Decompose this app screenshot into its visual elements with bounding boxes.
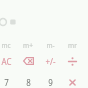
staticText: 8: [26, 77, 31, 88]
button[interactable]: Backspace: [17, 53, 39, 69]
button[interactable]: Divide: [61, 53, 83, 69]
button[interactable]: 9: [39, 74, 61, 88]
staticText: m-: [46, 41, 55, 50]
staticText: mr: [68, 41, 77, 50]
button[interactable]: 8: [17, 74, 39, 88]
staticText: 9: [48, 77, 53, 88]
staticText: 7: [4, 77, 9, 88]
button[interactable]: m+: [17, 38, 39, 52]
staticText: m+: [23, 41, 33, 50]
staticText: AC: [1, 56, 12, 67]
button[interactable]: mc: [0, 38, 17, 52]
button[interactable]: Menu: [8, 17, 18, 27]
button[interactable]: m-: [39, 38, 61, 52]
staticText: +/-: [45, 56, 56, 67]
button[interactable]: +/-: [39, 53, 61, 69]
button[interactable]: Multiply: [61, 74, 83, 88]
button[interactable]: History: [0, 16, 9, 28]
staticText: mc: [1, 41, 11, 50]
button[interactable]: 7: [0, 74, 17, 88]
button[interactable]: mr: [61, 38, 83, 52]
button[interactable]: AC: [0, 53, 17, 69]
